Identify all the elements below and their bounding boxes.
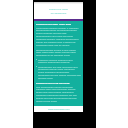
staticText: NOSPRILLATE HAIR TECHNOL [36,81,70,84]
button[interactable]: Support for novel mr agreement [34,2,83,19]
staticText: www.nosprillate.com [48,108,70,111]
staticText: The proprietary blend combines catalase … [36,85,81,103]
staticText: Support for novel mr agreement [49,8,68,14]
staticText: Supports natural pigment and reduces pre… [38,58,81,64]
staticText: Nosprillate tablets contain a specially … [36,26,81,47]
staticText: Recommended intake is one tablet daily t… [36,48,81,57]
staticText: Strengthens the hair structure and impro… [38,65,81,80]
staticText: NOSPRILLATE GREY HAIR TABS [36,22,72,25]
button[interactable]: www.nosprillate.com [34,106,83,112]
